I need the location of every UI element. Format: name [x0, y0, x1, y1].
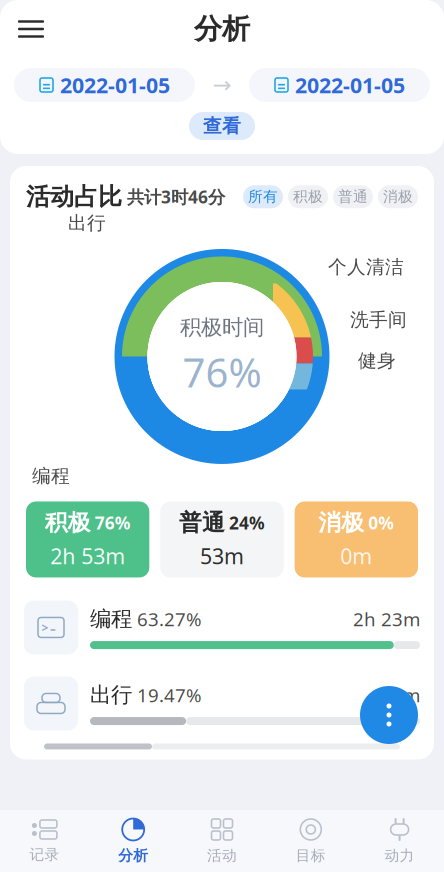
staticText: 查看 [203, 114, 241, 137]
staticText: 编程 [90, 606, 132, 632]
staticText: 消极 [383, 188, 413, 206]
staticText: 活动 [207, 846, 237, 864]
button[interactable]: 菜单 [8, 7, 54, 51]
staticText: 编程 [32, 464, 70, 487]
staticText: 健身 [358, 349, 396, 372]
staticText: 动力 [385, 846, 415, 864]
button[interactable]: 所有 [243, 185, 283, 208]
staticText: 2h 53m [50, 542, 125, 570]
button[interactable]: 2022-01-05 [14, 68, 195, 102]
staticText: 2h 23m [353, 607, 420, 631]
staticText: 个人清洁 [328, 255, 404, 278]
button[interactable]: 目标 [266, 810, 355, 872]
staticText: 普通 [338, 188, 368, 206]
staticText: 活动占比 [26, 182, 122, 211]
staticText: 分析 [118, 846, 148, 864]
staticText: 积极 [45, 509, 91, 537]
staticText: 76% [182, 345, 261, 399]
button[interactable]: > [10, 589, 434, 665]
button[interactable]: 动力 [355, 810, 444, 872]
button[interactable]: 出行 [10, 665, 434, 741]
button[interactable]: 积极 [26, 501, 149, 577]
staticText: → [212, 72, 231, 98]
staticText: 24% [229, 511, 265, 534]
staticText: 分析 [194, 12, 250, 46]
staticText: 所有 [248, 188, 278, 206]
staticText: 2022-01-05 [60, 71, 170, 99]
staticText: 积极时间 [180, 314, 264, 340]
button[interactable]: 记录 [0, 810, 89, 872]
button[interactable]: 普通 [333, 185, 373, 208]
staticText: 记录 [29, 845, 59, 863]
button[interactable]: 活动 [178, 810, 266, 872]
staticText: 76% [95, 511, 131, 534]
staticText: 0m [340, 542, 372, 570]
staticText: 出行 [68, 211, 106, 234]
staticText: 出行 [90, 682, 132, 708]
button[interactable]: 普通 [160, 501, 284, 577]
staticText: > [41, 619, 48, 635]
staticText: 19.47% [132, 683, 202, 707]
button[interactable]: 消极 [378, 185, 418, 208]
staticText: 积极 [293, 188, 323, 206]
staticText: 53m [200, 542, 244, 570]
staticText: 2022-01-05 [295, 71, 405, 99]
staticText: 洗手间 [350, 308, 407, 331]
button[interactable]: 2022-01-05 [249, 68, 430, 102]
button[interactable]: 查看 [189, 112, 255, 140]
staticText: 44m [381, 683, 420, 707]
button[interactable]: 积极 [288, 185, 328, 208]
staticText: 普通 [179, 509, 225, 537]
staticText: 目标 [296, 846, 326, 864]
button[interactable]: 更多操作 [360, 686, 418, 744]
staticText: 63.27% [132, 607, 202, 631]
button[interactable]: 至 [195, 68, 249, 102]
staticText: 0% [368, 511, 394, 534]
button[interactable]: 分析 [89, 810, 178, 872]
button[interactable]: 消极 [295, 501, 418, 577]
staticText: 消极 [318, 509, 364, 537]
staticText: 共计3时46分 [122, 185, 225, 208]
